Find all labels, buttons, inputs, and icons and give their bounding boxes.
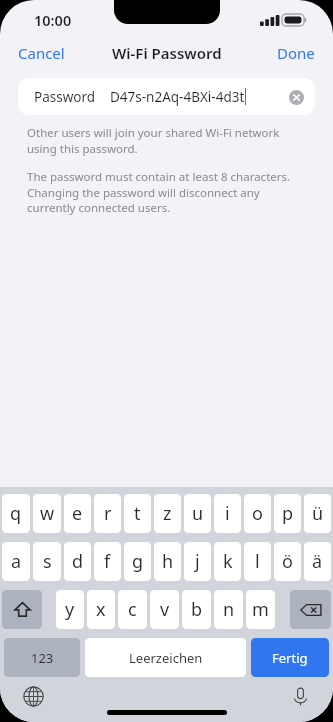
staticText: d <box>72 549 84 574</box>
staticText: n <box>223 597 235 622</box>
button[interactable]: Password <box>18 78 315 115</box>
staticText: m <box>252 597 269 622</box>
staticText: u <box>192 501 204 526</box>
staticText: The password must contain at least 8 cha… <box>27 169 306 215</box>
button[interactable]: ü <box>304 494 331 533</box>
button[interactable]: j <box>184 542 211 581</box>
button[interactable]: u <box>184 494 211 533</box>
staticText: q <box>10 501 22 526</box>
staticText: g <box>132 549 144 574</box>
button[interactable]: v <box>150 590 179 629</box>
button[interactable]: k <box>214 542 241 581</box>
button[interactable]: Clear text <box>281 82 311 112</box>
button[interactable]: o <box>244 494 271 533</box>
staticText: x <box>96 597 106 622</box>
staticText: Cancel <box>18 43 65 63</box>
staticText: ü <box>312 501 324 526</box>
button[interactable]: ä <box>304 542 331 581</box>
button[interactable]: Backspace <box>290 590 331 629</box>
staticText: ä <box>312 549 323 574</box>
button[interactable]: Done <box>259 37 333 69</box>
staticText: l <box>255 549 260 574</box>
button[interactable]: d <box>64 542 91 581</box>
staticText: r <box>104 501 112 526</box>
staticText: Leerzeichen <box>129 649 203 667</box>
button[interactable]: b <box>182 590 211 629</box>
button[interactable]: Leerzeichen <box>85 638 246 677</box>
button[interactable]: l <box>244 542 271 581</box>
staticText: Wi-Fi Password <box>112 43 222 63</box>
button[interactable]: Change keyboard language <box>18 681 48 711</box>
button[interactable]: q <box>2 494 30 533</box>
staticText: 123 <box>31 649 54 667</box>
staticText: p <box>282 501 294 526</box>
button[interactable]: r <box>94 494 121 533</box>
staticText: c <box>128 597 137 622</box>
staticText: v <box>160 597 170 622</box>
staticText: j <box>195 549 200 574</box>
button[interactable]: s <box>33 542 61 581</box>
staticText: i <box>225 501 230 526</box>
staticText: f <box>104 549 111 574</box>
button[interactable]: m <box>246 590 275 629</box>
staticText: o <box>252 501 263 526</box>
button[interactable]: f <box>94 542 121 581</box>
staticText: Done <box>277 43 315 63</box>
button[interactable]: ö <box>274 542 301 581</box>
button[interactable]: n <box>214 590 243 629</box>
button[interactable]: a <box>2 542 30 581</box>
staticText: 10:00 <box>34 10 72 30</box>
button[interactable]: t <box>124 494 151 533</box>
staticText: Fertig <box>272 649 308 667</box>
staticText: b <box>191 597 203 622</box>
staticText: D47s-n2Aq-4BXi-4d3t <box>110 88 245 106</box>
staticText: s <box>43 549 52 574</box>
staticText: Password <box>34 88 96 106</box>
button[interactable]: h <box>154 542 181 581</box>
staticText: ö <box>282 549 293 574</box>
button[interactable]: g <box>124 542 151 581</box>
button[interactable]: i <box>214 494 241 533</box>
button[interactable]: z <box>154 494 181 533</box>
button[interactable]: e <box>64 494 91 533</box>
button[interactable]: Cancel <box>0 37 83 69</box>
staticText: a <box>11 549 22 574</box>
button[interactable]: p <box>274 494 301 533</box>
staticText: z <box>163 501 172 526</box>
button[interactable]: 123 <box>4 638 80 677</box>
button[interactable]: Shift <box>2 590 42 629</box>
staticText: h <box>162 549 174 574</box>
staticText: Other users will join your shared Wi-Fi … <box>27 125 306 156</box>
staticText: k <box>223 549 233 574</box>
button[interactable]: y <box>56 590 84 629</box>
button[interactable]: x <box>87 590 115 629</box>
button[interactable]: c <box>118 590 147 629</box>
staticText: t <box>134 501 141 526</box>
staticText: y <box>65 597 75 622</box>
button[interactable]: w <box>33 494 61 533</box>
button[interactable]: Dictation <box>285 681 315 711</box>
staticText: e <box>72 501 83 526</box>
staticText: w <box>40 501 55 526</box>
button[interactable]: Fertig <box>251 638 329 677</box>
